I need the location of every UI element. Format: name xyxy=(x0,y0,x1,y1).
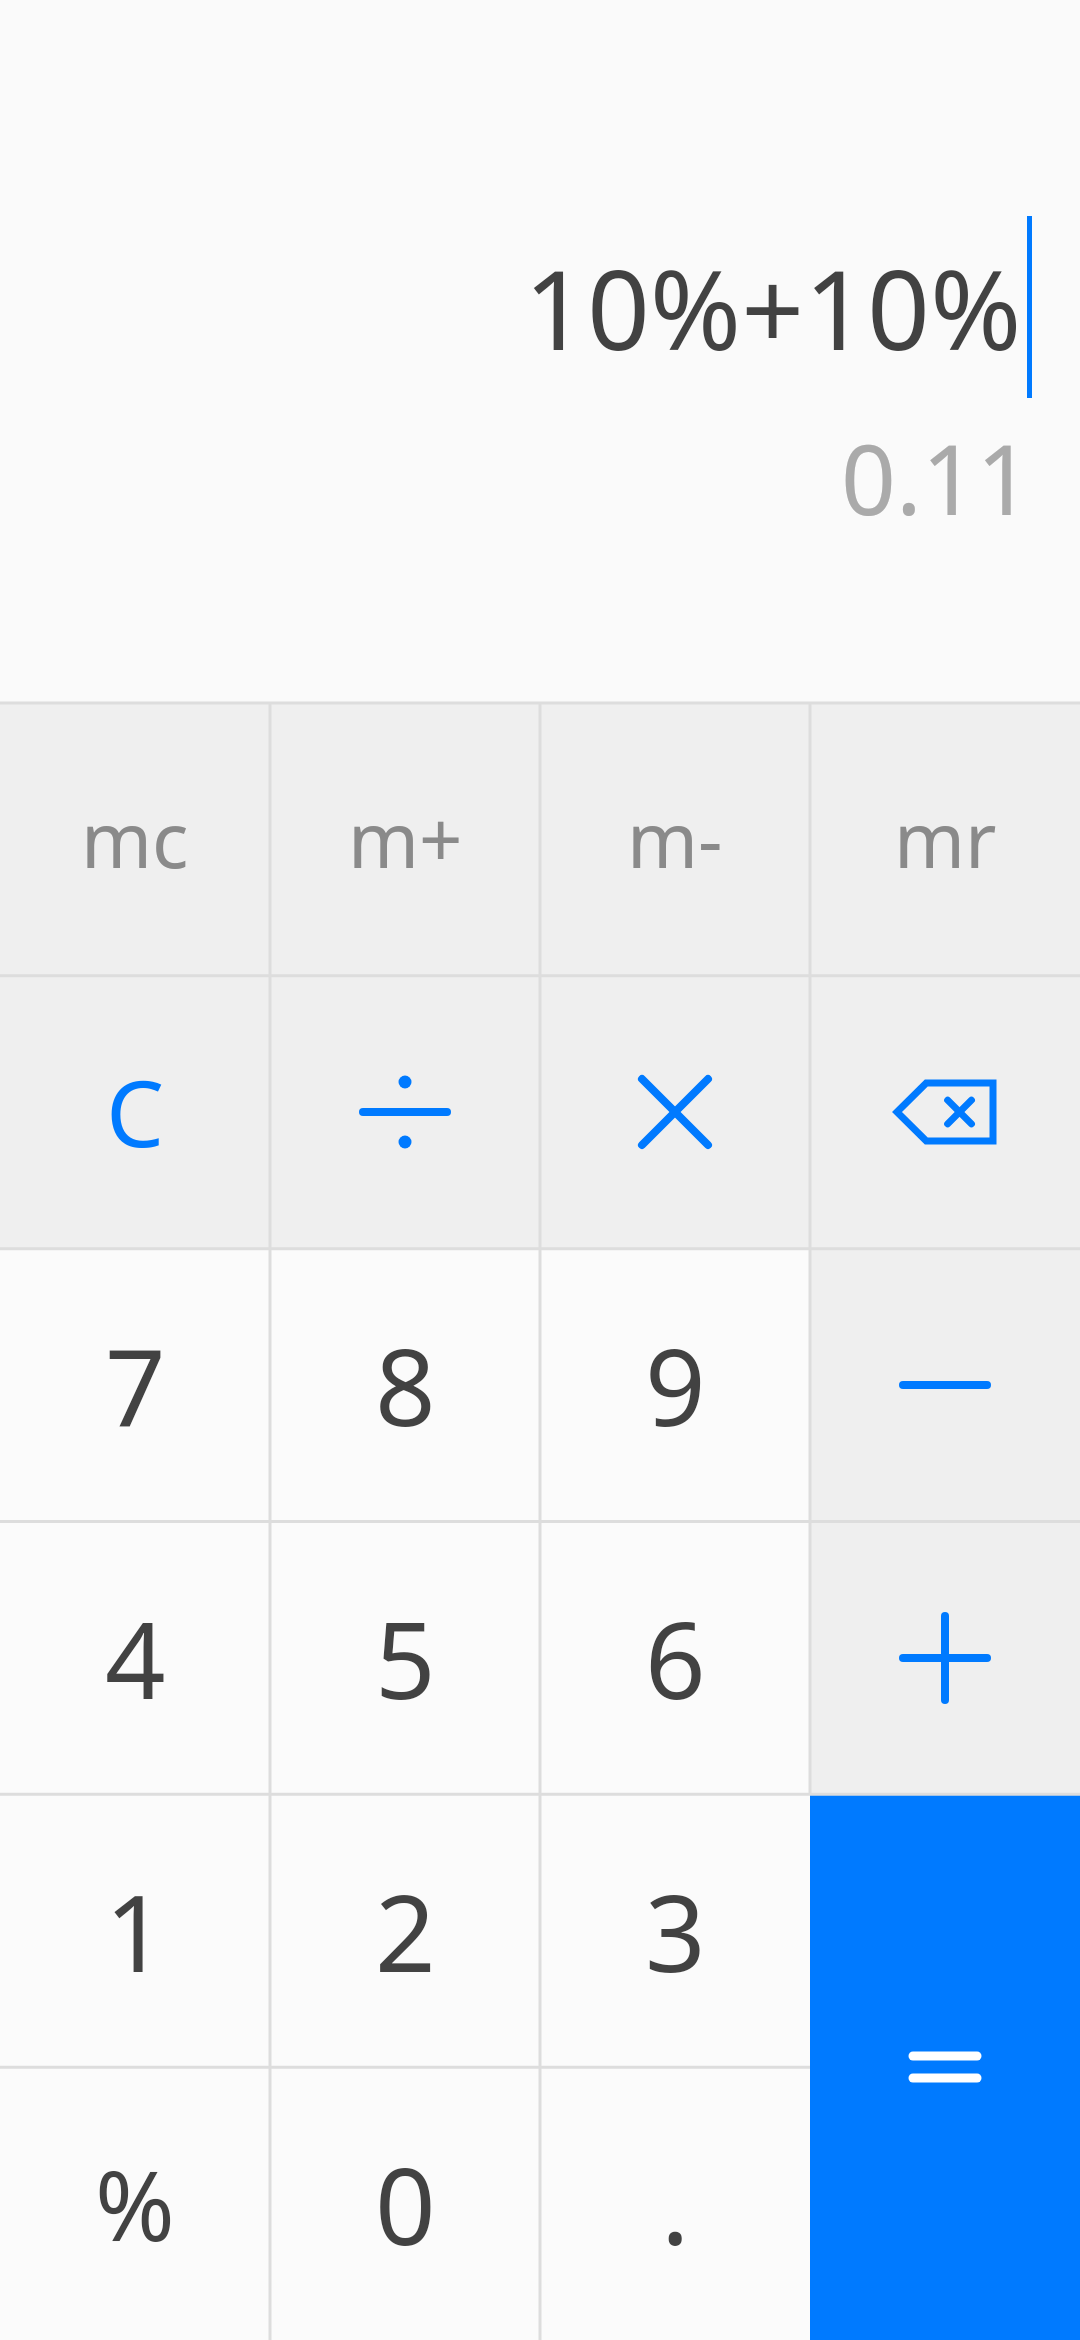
button[interactable]: 7 xyxy=(0,1248,270,1521)
staticText: 2 xyxy=(375,1859,436,2003)
button[interactable]: mr xyxy=(810,703,1080,975)
button[interactable]: C xyxy=(0,975,270,1248)
staticText: 0.11 xyxy=(841,412,1032,543)
button[interactable]: Minus xyxy=(810,1248,1080,1521)
button[interactable]: 9 xyxy=(540,1248,810,1521)
button[interactable]: Multiply xyxy=(540,975,810,1248)
staticText: . xyxy=(661,2132,690,2276)
button[interactable]: 0 xyxy=(270,2067,540,2340)
button[interactable]: 3 xyxy=(540,1794,810,2067)
staticText: 5 xyxy=(375,1586,436,1730)
staticText: 0 xyxy=(375,2132,436,2276)
button[interactable]: 6 xyxy=(540,1521,810,1794)
staticText: 4 xyxy=(105,1586,166,1730)
button[interactable]: Backspace xyxy=(810,975,1080,1248)
button[interactable]: mc xyxy=(0,703,270,975)
button[interactable]: 2 xyxy=(270,1794,540,2067)
staticText: 8 xyxy=(375,1313,436,1457)
button[interactable]: 8 xyxy=(270,1248,540,1521)
staticText: mc xyxy=(81,787,189,891)
button[interactable]: Divide xyxy=(270,975,540,1248)
staticText: C xyxy=(106,1049,165,1174)
staticText: mr xyxy=(894,787,997,891)
button[interactable]: m- xyxy=(540,703,810,975)
button[interactable]: Equals xyxy=(810,1794,1080,2340)
button[interactable]: % xyxy=(0,2067,270,2340)
staticText: 9 xyxy=(645,1313,706,1457)
staticText: m+ xyxy=(348,787,463,891)
staticText: % xyxy=(95,2138,175,2269)
button[interactable]: Plus xyxy=(810,1521,1080,1794)
button[interactable]: m+ xyxy=(270,703,540,975)
staticText: 7 xyxy=(105,1313,166,1457)
staticText: m- xyxy=(627,787,723,891)
staticText: 10%+10% xyxy=(524,232,1022,382)
staticText: 6 xyxy=(645,1586,706,1730)
button[interactable]: . xyxy=(540,2067,810,2340)
button[interactable]: 5 xyxy=(270,1521,540,1794)
staticText: 3 xyxy=(645,1859,706,2003)
button[interactable]: 4 xyxy=(0,1521,270,1794)
button[interactable]: 1 xyxy=(0,1794,270,2067)
staticText: 1 xyxy=(105,1859,166,2003)
